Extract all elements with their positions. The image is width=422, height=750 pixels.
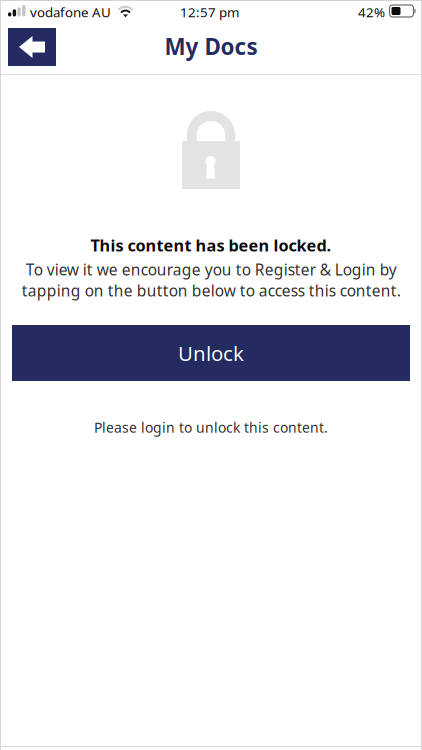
button[interactable]: Back	[8, 28, 56, 66]
staticText: 42%	[358, 3, 385, 21]
staticText: Please login to unlock this content.	[94, 418, 328, 437]
staticText: 12:57 pm	[180, 3, 239, 21]
staticText: Unlock	[178, 339, 244, 367]
staticText: To view it we encourage you to Register …	[21, 259, 400, 301]
staticText: This content has been locked.	[90, 234, 331, 256]
staticText: vodafone AU	[30, 3, 111, 21]
button[interactable]: Unlock	[12, 325, 410, 381]
staticText: My Docs	[164, 31, 257, 61]
